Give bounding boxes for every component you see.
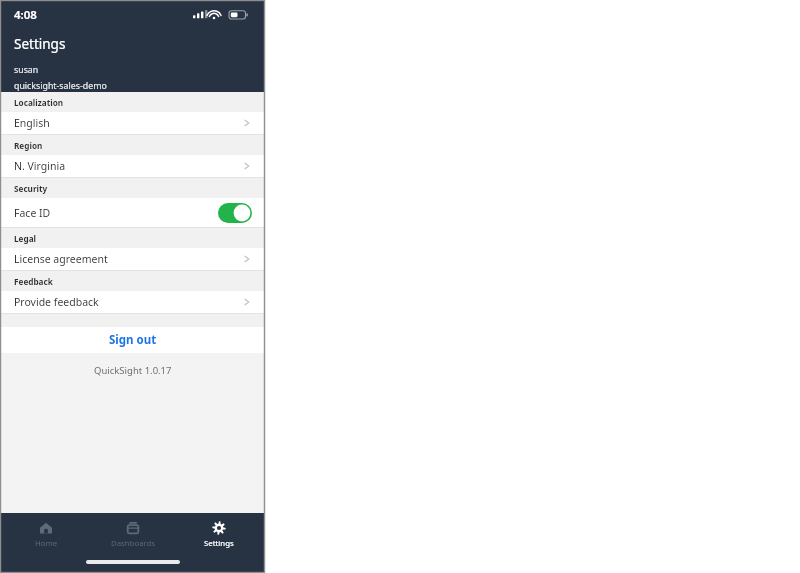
button[interactable]: Provide feedback (0, 291, 265, 313)
staticText: N. Virginia (14, 159, 66, 173)
staticText: Face ID (14, 206, 51, 220)
staticText: Settings (14, 35, 66, 53)
staticText: License agreement (14, 252, 108, 266)
staticText: Dashboards (111, 538, 156, 549)
button[interactable]: Home (6, 519, 86, 551)
button[interactable]: N. Virginia (0, 155, 265, 177)
staticText: English (14, 116, 50, 130)
staticText: Home (35, 538, 58, 549)
staticText: susan (14, 64, 39, 76)
button[interactable]: License agreement (0, 248, 265, 270)
button[interactable]: Settings (179, 519, 259, 551)
staticText: Security (14, 183, 48, 194)
button[interactable]: Dashboards (93, 519, 173, 551)
button[interactable]: Sign out (0, 327, 265, 353)
staticText: Localization (14, 97, 64, 108)
staticText: QuickSight 1.0.17 (94, 364, 172, 377)
staticText: Region (14, 140, 43, 151)
button[interactable]: English (0, 112, 265, 134)
button[interactable]: Face ID toggle, on (218, 203, 252, 223)
staticText: Legal (14, 233, 36, 244)
staticText: 4:08 (14, 7, 37, 23)
staticText: Provide feedback (14, 295, 99, 309)
staticText: Sign out (109, 332, 157, 348)
staticText: quicksight-sales-demo (14, 80, 107, 92)
staticText: Feedback (14, 276, 53, 287)
staticText: Settings (204, 538, 234, 549)
